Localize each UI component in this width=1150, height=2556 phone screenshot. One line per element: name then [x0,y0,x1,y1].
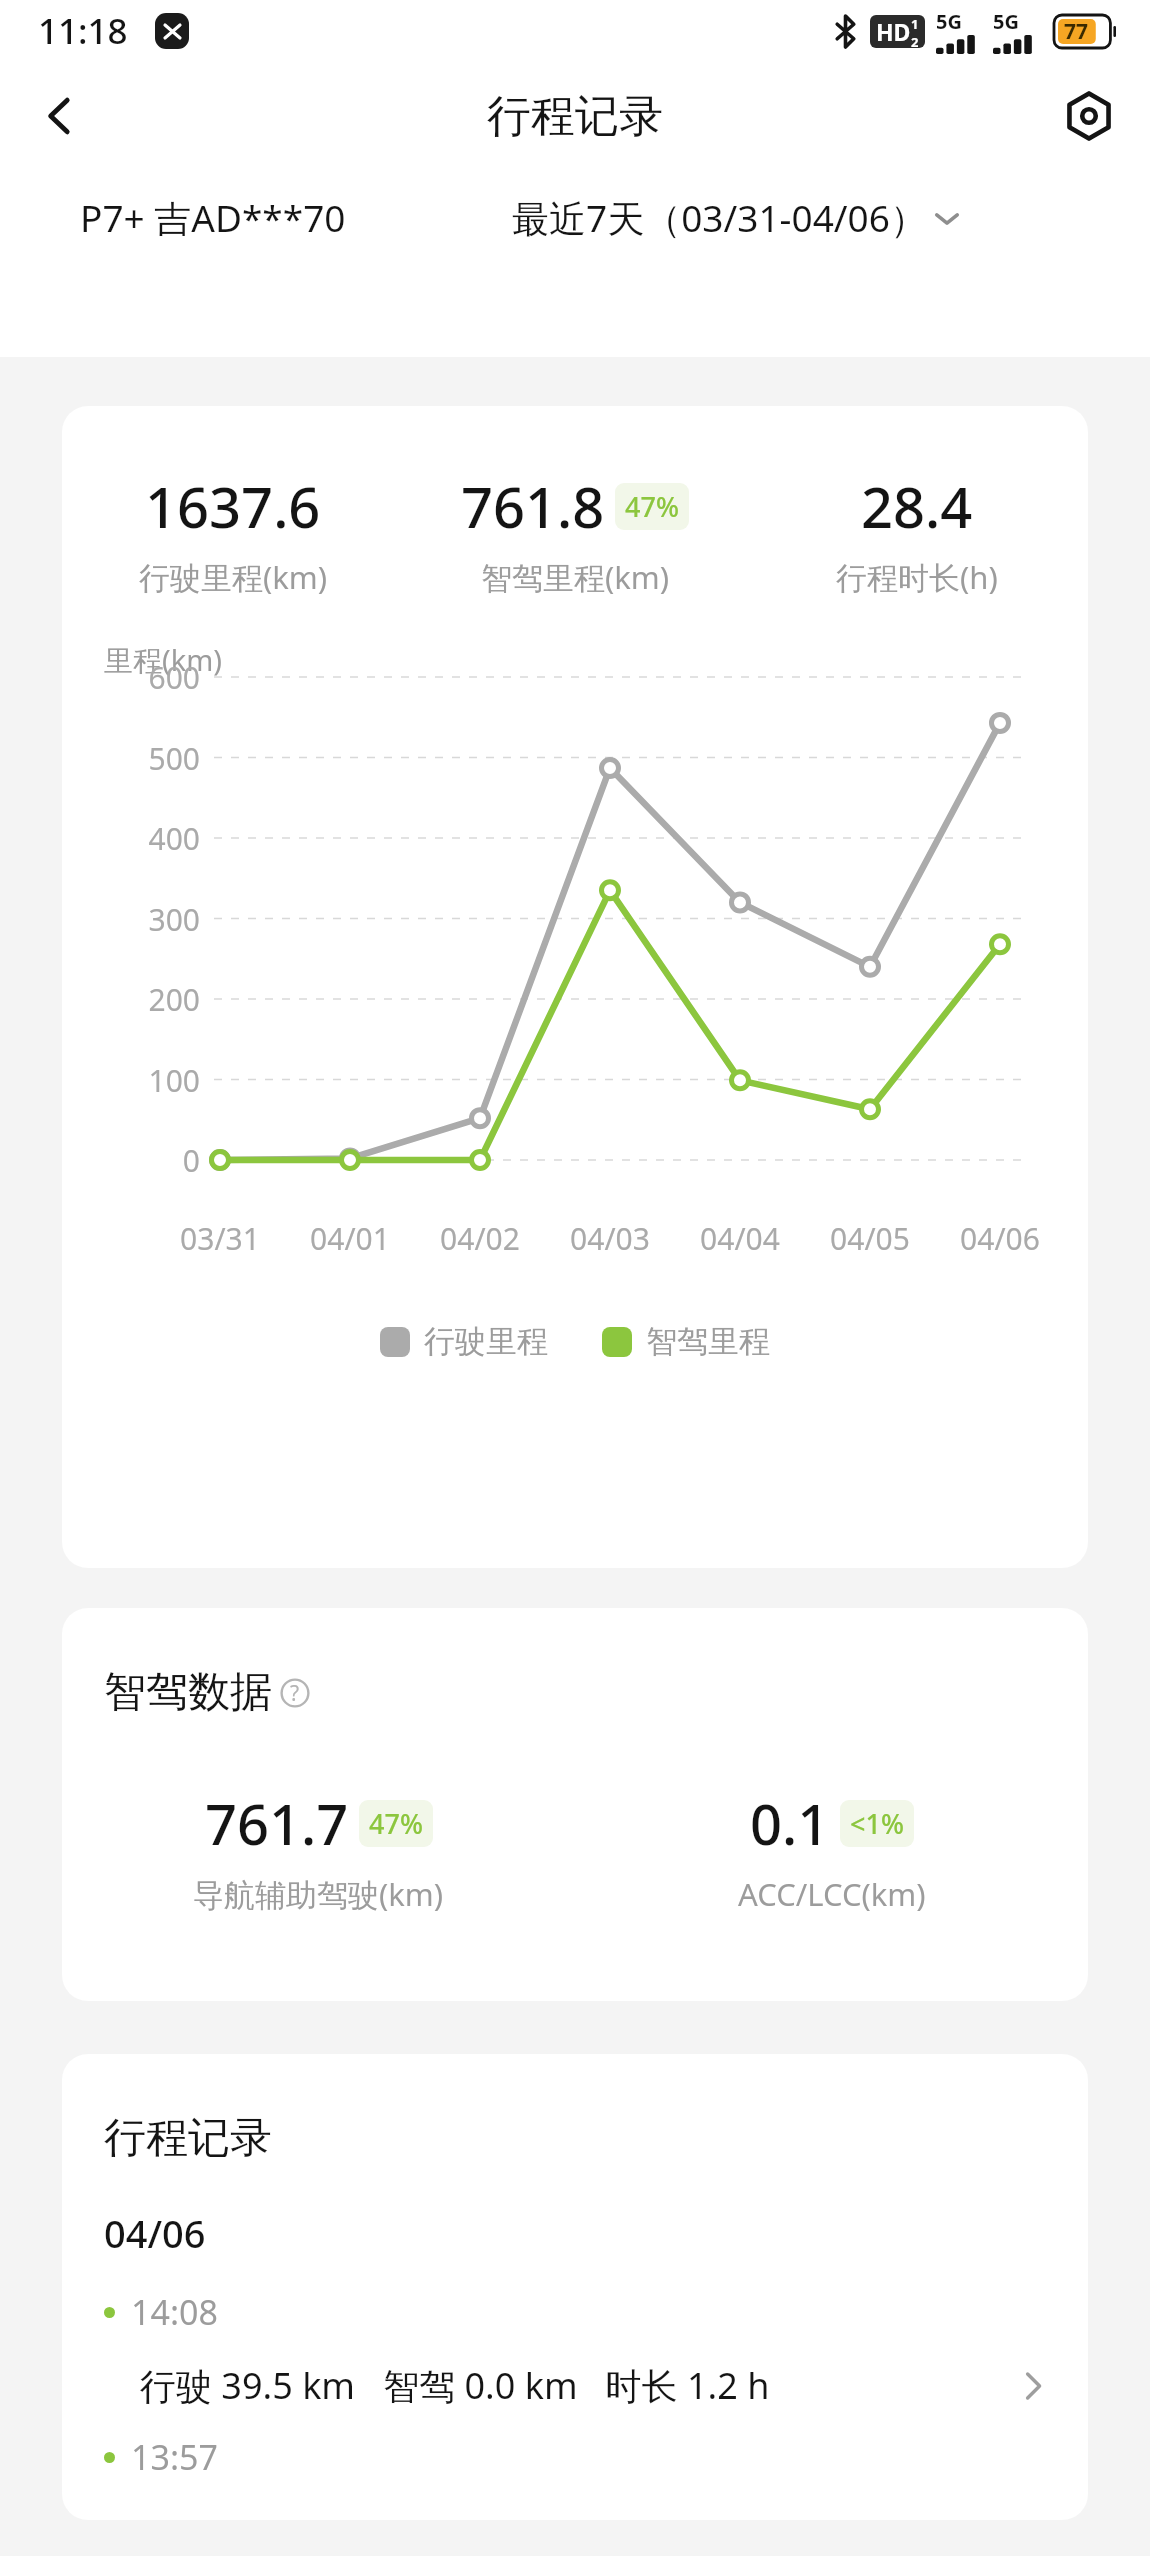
staticText: 04/06 [945,1218,1055,1259]
staticText: 智驾里程 [646,1322,770,1361]
staticText: 761.7 [205,1785,349,1861]
staticText: <1% [850,1805,904,1842]
staticText: 行程记录 [104,2112,272,2165]
staticText: 500 [104,738,200,779]
staticText: 1637.6 [145,468,321,544]
button[interactable]: 14:08 [62,2289,1088,2410]
staticText: P7+ 吉AD***70 [80,192,346,243]
staticText: 1 [911,15,919,33]
staticText: 11:18 [38,7,128,55]
staticText: 77 [1064,17,1089,46]
staticText: 行驶 39.5 km 智驾 0.0 km 时长 1.2 h [140,2361,770,2410]
staticText: 智驾里程(km) [481,556,670,598]
button[interactable]: Settings [1048,75,1130,157]
button[interactable]: Back [20,76,100,156]
staticText: 0 [104,1140,200,1181]
staticText: 0.1 [750,1785,830,1861]
staticText: ACC/LCC(km) [738,1873,926,1915]
staticText: 行驶里程(km) [139,556,328,598]
staticText: 200 [104,979,200,1020]
staticText: 里程(km) [104,640,223,680]
button[interactable]: 智驾里程 [602,1322,770,1361]
staticText: 2 [911,33,919,48]
staticText: 04/02 [425,1218,535,1259]
staticText: HD [876,16,911,47]
staticText: 100 [104,1060,200,1101]
staticText: 300 [104,899,200,940]
staticText: 04/01 [295,1218,405,1259]
staticText: 5G [936,8,962,35]
staticText: 智驾数据 [104,1666,272,1719]
staticText: 14:08 [131,2289,218,2335]
staticText: 400 [104,818,200,859]
staticText: 761.8 [461,468,605,544]
staticText: 行驶里程 [424,1322,548,1361]
button[interactable]: 行驶里程 [380,1322,548,1361]
staticText: 导航辅助驾驶(km) [193,1873,444,1915]
staticText: 47% [625,488,679,525]
staticText: ? [290,1679,300,1708]
staticText: 03/31 [165,1218,275,1259]
staticText: 5G [993,8,1019,35]
staticText: 行程记录 [487,89,663,144]
staticText: 04/03 [555,1218,665,1259]
staticText: 04/04 [685,1218,795,1259]
staticText: 28.4 [861,468,973,544]
staticText: 600 [104,657,200,698]
staticText: 04/06 [104,2207,206,2259]
staticText: 行程时长(h) [836,556,998,598]
button[interactable]: Help [278,1676,312,1710]
staticText: 47% [369,1805,423,1842]
staticText: 04/05 [815,1218,925,1259]
staticText: 13:57 [131,2434,218,2480]
button[interactable]: 最近7天（03/31-04/06） [512,192,963,243]
staticText: 最近7天（03/31-04/06） [512,192,927,243]
